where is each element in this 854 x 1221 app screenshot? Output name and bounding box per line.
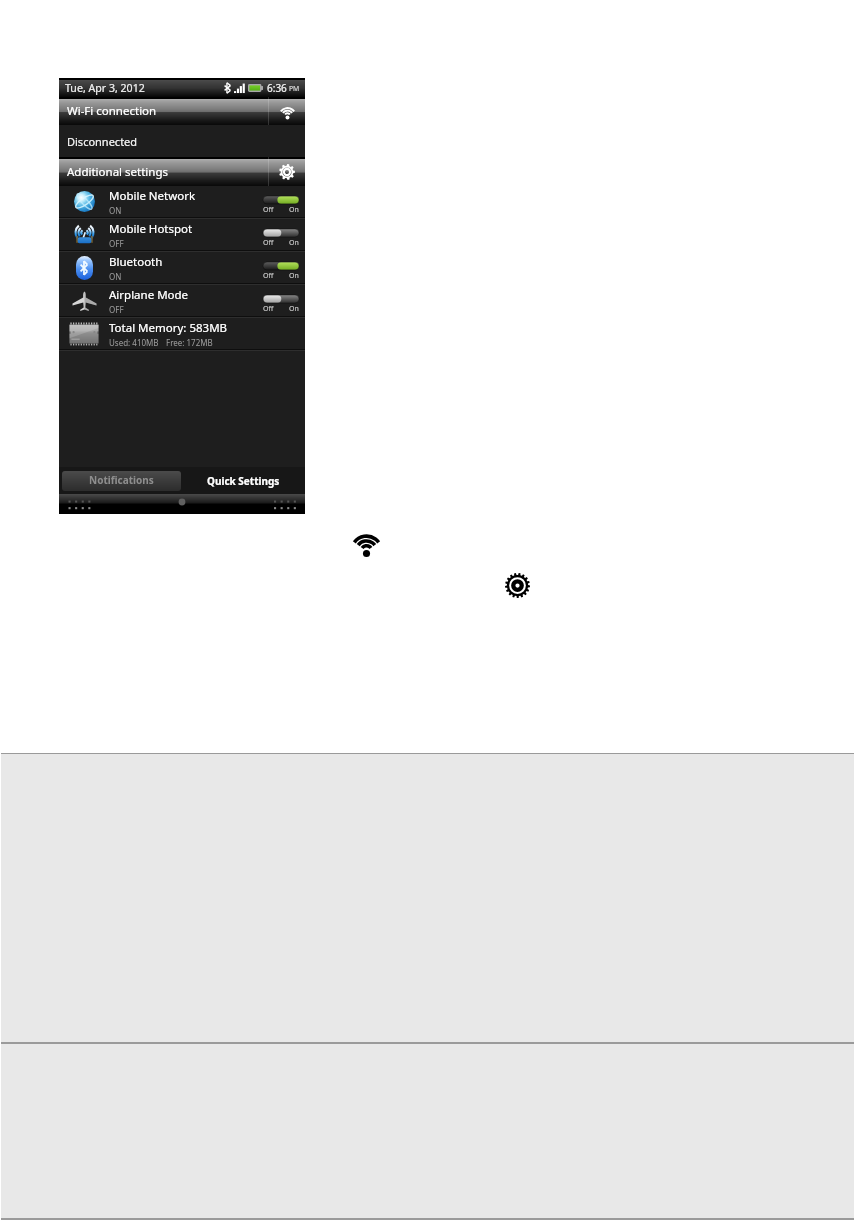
staticText: Mobile Hotspot <box>109 221 193 237</box>
button[interactable]: Toggle Mobile Hotspot <box>262 221 300 248</box>
staticText: On <box>289 304 299 314</box>
staticText: Quick Settings <box>207 474 280 488</box>
staticText: Off <box>263 238 274 248</box>
button[interactable]: Toggle Airplane Mode <box>262 287 300 314</box>
staticText: Free: 172MB <box>166 337 213 348</box>
button[interactable]: Quick Settings <box>182 470 305 494</box>
button[interactable]: Airplane Mode <box>59 285 305 316</box>
button[interactable]: Notifications <box>62 471 181 491</box>
staticText: On <box>289 205 299 215</box>
button[interactable]: Mobile Hotspot <box>59 219 305 250</box>
staticText: OFF <box>109 304 124 315</box>
button[interactable]: Bluetooth <box>59 252 305 283</box>
staticText: Disconnected <box>67 134 138 149</box>
staticText: Off <box>263 271 274 281</box>
button[interactable]: Wi-Fi settings <box>269 97 305 125</box>
staticText: Off <box>263 205 274 215</box>
button[interactable]: Settings <box>269 157 305 186</box>
staticText: Mobile Network <box>109 188 196 204</box>
staticText: Used: 410MB <box>109 337 159 348</box>
button[interactable]: Toggle Mobile Network <box>262 188 300 215</box>
staticText: Notifications <box>89 473 154 487</box>
button[interactable]: Toggle Bluetooth <box>262 254 300 281</box>
staticText: Additional settings <box>67 164 169 180</box>
button[interactable]: Disconnected <box>59 125 305 157</box>
staticText: Off <box>263 304 274 314</box>
staticText: On <box>289 271 299 281</box>
button[interactable]: Wi-Fi connection <box>59 97 305 125</box>
button[interactable]: Mobile Network <box>59 186 305 217</box>
staticText: On <box>289 238 299 248</box>
button[interactable]: Total Memory: 583MB <box>59 318 305 349</box>
staticText: Total Memory: 583MB <box>109 320 228 336</box>
staticText: PM <box>289 84 300 93</box>
button[interactable]: Additional settings <box>59 157 305 186</box>
staticText: Tue, Apr 3, 2012 <box>65 81 145 95</box>
button[interactable]: Settings <box>505 573 530 598</box>
staticText: Airplane Mode <box>109 287 189 303</box>
staticText: ON <box>109 271 122 282</box>
staticText: Wi-Fi connection <box>67 103 157 119</box>
staticText: OFF <box>109 238 124 249</box>
staticText: Bluetooth <box>109 254 163 270</box>
staticText: ON <box>109 205 122 216</box>
button[interactable]: Wi-Fi <box>351 527 382 558</box>
staticText: 6:36 <box>267 81 287 95</box>
